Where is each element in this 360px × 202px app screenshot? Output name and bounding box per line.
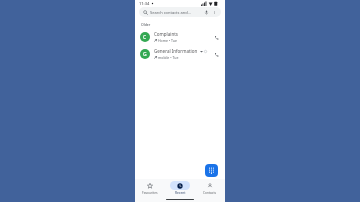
button[interactable]: Dialpad bbox=[205, 164, 218, 177]
staticText: 11:34 bbox=[139, 1, 150, 6]
button[interactable]: Contacts bbox=[195, 179, 225, 197]
staticText: General Information bbox=[154, 48, 198, 54]
staticText: C bbox=[143, 34, 147, 41]
button[interactable]: C bbox=[135, 28, 225, 45]
staticText: Search contacts and… bbox=[150, 10, 203, 15]
button[interactable]: Recent bbox=[165, 179, 195, 197]
button[interactable]: Favourites bbox=[135, 179, 165, 197]
staticText: Older bbox=[141, 22, 151, 27]
staticText: Home • Tue bbox=[158, 38, 178, 43]
button[interactable]: Call bbox=[212, 50, 220, 58]
staticText: Complaints bbox=[154, 31, 178, 37]
staticText: Favourites bbox=[142, 191, 158, 195]
staticText: Contacts bbox=[203, 191, 217, 195]
staticText: G bbox=[143, 51, 147, 58]
staticText: mobile • Tue bbox=[158, 55, 179, 60]
button[interactable]: G bbox=[135, 45, 225, 62]
staticText: Recent bbox=[175, 191, 186, 195]
button[interactable]: Search contacts and… bbox=[139, 7, 221, 17]
button[interactable]: Call bbox=[212, 33, 220, 41]
button[interactable]: More options bbox=[212, 10, 217, 15]
